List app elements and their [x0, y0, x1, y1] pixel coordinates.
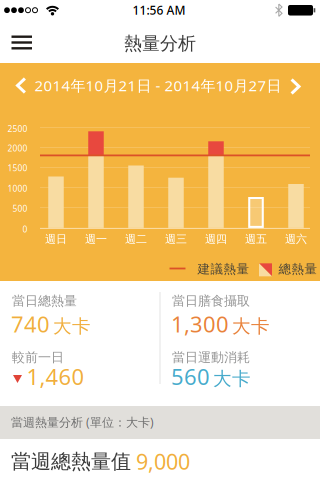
staticText: 週三 [165, 232, 187, 246]
staticText: 2000 [7, 142, 27, 154]
staticText: 1,300 [171, 309, 229, 339]
staticText: 週二 [125, 232, 147, 246]
staticText: 11:56 AM [132, 2, 185, 18]
staticText: 560 [171, 361, 210, 391]
staticText: 週一 [85, 232, 107, 246]
staticText: 當日運動消耗 [172, 349, 250, 366]
staticText: 熱量分析 [124, 32, 196, 55]
staticText: 當日總熱量 [12, 293, 77, 309]
staticText: 週五 [245, 232, 267, 246]
staticText: 總熱量 [278, 261, 317, 277]
staticText: 大卡 [53, 315, 91, 338]
staticText: 2014年10月21日 - 2014年10月27日 [34, 75, 281, 96]
staticText: 9,000 [136, 447, 190, 476]
staticText: 當週熱量分析 (單位：大卡) [11, 414, 154, 430]
staticText: 週六 [285, 232, 307, 246]
staticText: 建議熱量 [197, 261, 249, 277]
staticText: 740 [11, 309, 50, 339]
staticText: 當日膳食攝取 [172, 293, 250, 309]
staticText: 大卡 [232, 315, 270, 338]
staticText: 500 [12, 203, 27, 214]
button[interactable]: Menu [7, 27, 37, 58]
button[interactable]: Next week [286, 77, 304, 95]
staticText: 較前一日 [12, 349, 64, 366]
staticText: 週四 [205, 232, 227, 246]
staticText: 0 [22, 223, 27, 235]
button[interactable]: 當週總熱量值 [0, 439, 320, 480]
staticText: 1,460 [26, 361, 84, 391]
staticText: 1500 [7, 162, 27, 174]
staticText: 大卡 [213, 367, 251, 390]
staticText: 1000 [7, 183, 27, 194]
staticText: 當週總熱量值 [11, 449, 131, 474]
button[interactable]: Previous week [12, 76, 30, 94]
staticText: 2500 [7, 123, 27, 135]
staticText: 週日 [45, 232, 67, 246]
